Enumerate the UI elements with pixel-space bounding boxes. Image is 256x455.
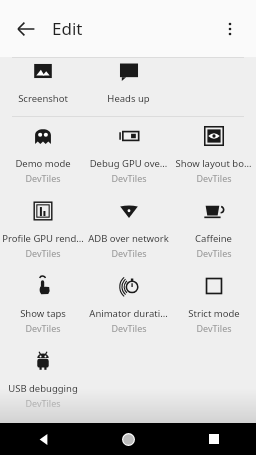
button[interactable]: ADB over network bbox=[86, 192, 171, 267]
button[interactable]: Demo mode bbox=[0, 117, 86, 192]
staticText: DevTiles bbox=[111, 247, 147, 259]
staticText: DevTiles bbox=[196, 247, 232, 259]
staticText: Show taps bbox=[20, 307, 66, 320]
staticText: Caffeine bbox=[195, 232, 232, 245]
button[interactable]: More options bbox=[210, 9, 250, 49]
button[interactable]: Strict mode bbox=[171, 267, 256, 342]
button[interactable]: Caffeine bbox=[171, 192, 256, 267]
staticText: Edit bbox=[52, 17, 83, 40]
staticText: DevTiles bbox=[25, 322, 61, 334]
staticText: ADB over network bbox=[88, 232, 169, 245]
staticText: Demo mode bbox=[15, 157, 71, 170]
staticText: DevTiles bbox=[196, 322, 232, 334]
button[interactable]: USB debugging bbox=[0, 342, 86, 417]
staticText: Screenshot bbox=[18, 92, 68, 105]
button[interactable]: Debug GPU overdraw bbox=[86, 117, 171, 192]
staticText: Profile GPU rendering bbox=[2, 232, 84, 245]
button[interactable]: Screenshot bbox=[0, 58, 86, 116]
staticText: Heads up bbox=[107, 92, 150, 105]
staticText: Show layout bounds bbox=[173, 157, 254, 170]
staticText: DevTiles bbox=[25, 172, 61, 184]
staticText: DevTiles bbox=[196, 172, 232, 184]
staticText: Animator duration s… bbox=[88, 307, 169, 320]
button[interactable]: Profile GPU rendering bbox=[0, 192, 86, 267]
button[interactable]: Back bbox=[6, 9, 46, 49]
button[interactable]: Heads up bbox=[86, 58, 171, 116]
button[interactable]: Home bbox=[86, 423, 171, 455]
staticText: DevTiles bbox=[111, 172, 147, 184]
staticText: DevTiles bbox=[111, 322, 147, 334]
button[interactable]: Back bbox=[0, 423, 86, 455]
staticText: Strict mode bbox=[188, 307, 240, 320]
button[interactable]: Show taps bbox=[0, 267, 86, 342]
staticText: Debug GPU overdraw bbox=[88, 157, 169, 170]
button[interactable]: Animator duration s… bbox=[86, 267, 171, 342]
staticText: USB debugging bbox=[8, 382, 78, 395]
staticText: DevTiles bbox=[25, 397, 61, 409]
button[interactable]: Recents bbox=[171, 423, 256, 455]
button[interactable]: Show layout bounds bbox=[171, 117, 256, 192]
staticText: DevTiles bbox=[25, 247, 61, 259]
